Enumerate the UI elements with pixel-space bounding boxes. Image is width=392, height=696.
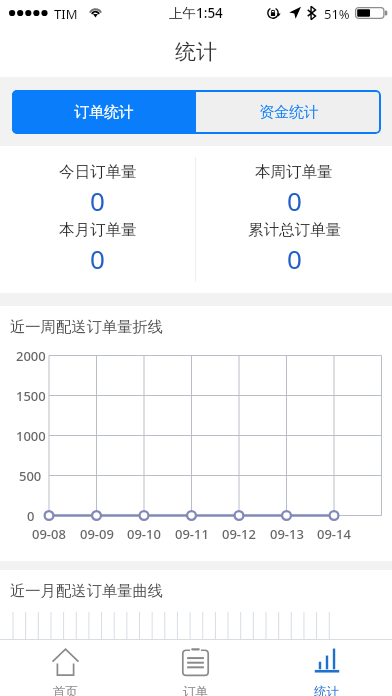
staticText: 09-13: [270, 525, 304, 543]
staticText: 0: [27, 507, 35, 525]
button[interactable]: 首页: [0, 641, 130, 696]
staticText: 1500: [16, 387, 46, 405]
staticText: 2000: [16, 347, 46, 365]
staticText: 本周订单量: [255, 162, 333, 182]
button[interactable]: 订单统计: [12, 90, 196, 134]
staticText: 0: [90, 241, 105, 276]
staticText: 上午1:54: [169, 4, 223, 22]
other: 首页: [52, 648, 79, 676]
other: 订单: [182, 648, 209, 676]
staticText: 统计: [314, 684, 339, 696]
staticText: 0: [90, 183, 105, 218]
staticText: 09-08: [32, 525, 66, 543]
staticText: 近一月配送订单量曲线: [10, 581, 163, 600]
staticText: 统计: [175, 39, 217, 65]
button[interactable]: 统计: [261, 641, 392, 696]
staticText: 0: [287, 241, 302, 276]
staticText: 订单: [183, 684, 208, 696]
staticText: 09-12: [222, 525, 256, 543]
staticText: 订单统计: [74, 103, 134, 122]
staticText: TIM: [54, 5, 78, 23]
staticText: 首页: [53, 684, 78, 696]
staticText: 09-10: [127, 525, 161, 543]
staticText: 近一周配送订单量折线: [10, 317, 163, 336]
staticText: 1000: [16, 427, 46, 445]
staticText: 0: [287, 183, 302, 218]
staticText: 51%: [324, 5, 350, 23]
staticText: 资金统计: [259, 103, 319, 122]
staticText: 本月订单量: [59, 220, 137, 240]
staticText: 累计总订单量: [248, 220, 341, 240]
staticText: 09-14: [317, 525, 351, 543]
staticText: 09-09: [80, 525, 114, 543]
staticText: 500: [19, 467, 42, 485]
button[interactable]: 资金统计: [196, 90, 381, 134]
other: 统计: [314, 648, 340, 676]
button[interactable]: 订单: [130, 641, 261, 696]
staticText: 今日订单量: [59, 162, 137, 182]
staticText: 09-11: [175, 525, 209, 543]
